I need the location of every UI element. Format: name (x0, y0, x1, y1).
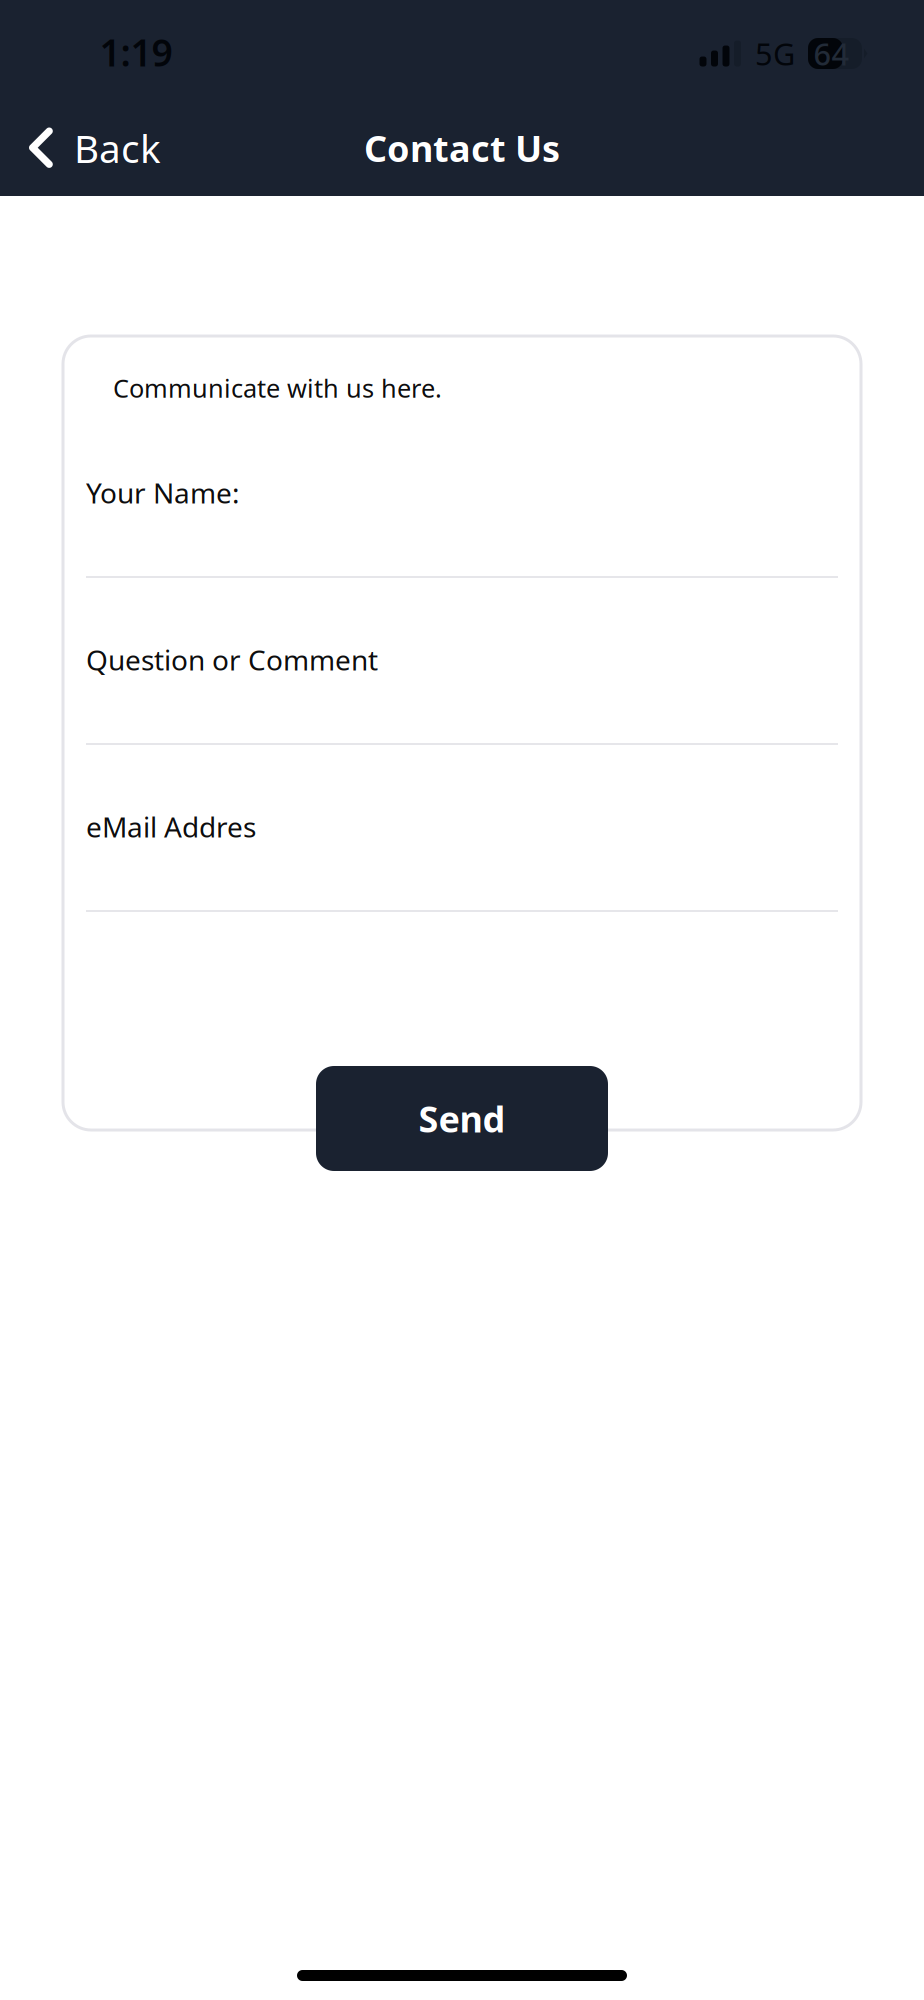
button[interactable]: eMail Addres (86, 745, 838, 912)
button[interactable]: Send (316, 1066, 608, 1171)
button[interactable]: Question or Comment (86, 578, 838, 745)
staticText: Communicate with us here. (113, 371, 442, 405)
staticText: 5G (755, 33, 795, 74)
staticText: Send (418, 1095, 505, 1142)
button[interactable]: Back (0, 100, 185, 196)
staticText: Back (74, 122, 161, 174)
staticText: 1:19 (99, 27, 172, 77)
staticText: eMail Addres (86, 808, 256, 845)
staticText: Your Name: (86, 474, 240, 511)
button[interactable]: Your Name: (86, 411, 838, 578)
staticText: Question or Comment (86, 641, 378, 678)
staticText: Contact Us (364, 124, 560, 172)
staticText: 64 (813, 33, 849, 74)
